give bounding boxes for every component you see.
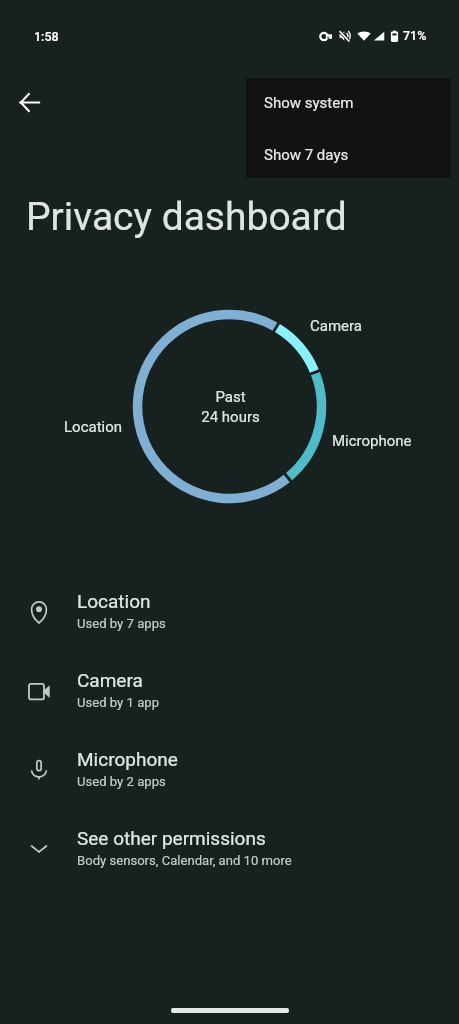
staticText: Camera <box>77 669 143 691</box>
staticText: 24 hours <box>201 408 260 426</box>
staticText: Microphone <box>332 432 412 450</box>
staticText: Show 7 days <box>264 146 349 164</box>
button[interactable]: Microphone <box>0 729 459 808</box>
staticText: Used by 2 apps <box>77 774 166 789</box>
button[interactable]: Location <box>0 571 459 650</box>
button[interactable]: Show system <box>246 78 451 128</box>
button[interactable]: Show 7 days <box>246 131 451 178</box>
staticText: Microphone <box>77 748 178 770</box>
staticText: Camera <box>310 317 362 335</box>
staticText: See other permissions <box>77 827 266 849</box>
staticText: Body sensors, Calendar, and 10 more <box>77 853 292 868</box>
button[interactable]: See other permissions <box>0 808 459 887</box>
staticText: Used by 7 apps <box>77 616 166 631</box>
staticText: Used by 1 app <box>77 695 159 710</box>
staticText: Location <box>64 418 123 436</box>
button[interactable]: Back <box>6 79 53 126</box>
staticText: Location <box>77 590 151 612</box>
staticText: Past <box>215 388 246 406</box>
staticText: 71% <box>403 28 427 43</box>
button[interactable]: Camera <box>0 650 459 729</box>
staticText: 1:58 <box>34 29 59 44</box>
staticText: Show system <box>264 94 354 112</box>
staticText: Privacy dashboard <box>26 194 347 240</box>
